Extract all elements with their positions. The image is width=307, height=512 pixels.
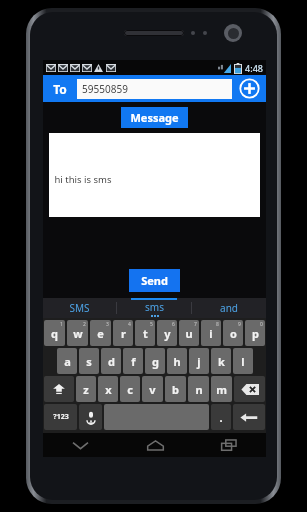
staticText: 6 xyxy=(172,321,175,328)
button[interactable]: Symbols xyxy=(44,404,77,430)
button[interactable]: j xyxy=(189,348,209,374)
button[interactable]: Recent apps xyxy=(192,433,266,457)
button[interactable]: Hide keyboard xyxy=(43,433,118,457)
staticText: h xyxy=(173,354,181,369)
staticText: Send xyxy=(141,273,168,288)
staticText: n xyxy=(195,382,203,397)
staticText: f xyxy=(131,354,136,369)
staticText: d xyxy=(108,354,115,369)
staticText: x xyxy=(105,382,112,397)
button[interactable]: l xyxy=(233,348,253,374)
staticText: hi this is sms xyxy=(54,173,112,186)
button[interactable]: z xyxy=(76,376,96,402)
staticText: 9 xyxy=(238,321,241,328)
button[interactable]: h xyxy=(167,348,187,374)
button[interactable]: w xyxy=(67,320,88,346)
button[interactable]: r xyxy=(113,320,133,346)
button[interactable]: Enter xyxy=(233,404,265,430)
button[interactable]: and xyxy=(192,298,266,318)
button[interactable]: u xyxy=(179,320,199,346)
staticText: SMS xyxy=(69,301,90,315)
staticText: c xyxy=(127,382,133,397)
button[interactable]: t xyxy=(135,320,155,346)
button[interactable]: x xyxy=(98,376,118,402)
staticText: To xyxy=(53,81,67,97)
button[interactable]: s xyxy=(79,348,99,374)
staticText: w xyxy=(73,326,83,341)
button[interactable]: m xyxy=(211,376,232,402)
staticText: 1 xyxy=(60,321,63,328)
button[interactable]: y xyxy=(157,320,177,346)
staticText: ?123 xyxy=(53,412,69,422)
staticText: Message xyxy=(130,110,179,125)
staticText: g xyxy=(152,354,159,369)
staticText: k xyxy=(218,354,225,369)
staticText: 3 xyxy=(106,321,109,328)
button[interactable]: Shift xyxy=(44,376,74,402)
button[interactable]: Add contact xyxy=(232,75,266,102)
button[interactable]: c xyxy=(120,376,140,402)
button[interactable]: SMS xyxy=(43,298,116,318)
staticText: 59550859 xyxy=(82,82,128,96)
staticText: q xyxy=(51,326,58,341)
button[interactable]: b xyxy=(165,376,186,402)
button[interactable]: Voice input xyxy=(79,404,102,430)
button[interactable]: f xyxy=(123,348,143,374)
button[interactable]: q xyxy=(44,320,65,346)
button[interactable]: 59550859 xyxy=(77,79,232,99)
staticText: y xyxy=(164,326,171,341)
staticText: o xyxy=(230,326,237,341)
staticText: 4 xyxy=(128,321,131,328)
staticText: b xyxy=(172,382,179,397)
staticText: a xyxy=(64,354,71,369)
staticText: . xyxy=(219,410,223,425)
button[interactable]: g xyxy=(145,348,165,374)
button[interactable]: o xyxy=(223,320,243,346)
button[interactable]: n xyxy=(188,376,209,402)
staticText: m xyxy=(216,382,227,397)
staticText: 7 xyxy=(194,321,197,328)
staticText: 5 xyxy=(150,321,153,328)
staticText: z xyxy=(83,382,89,397)
button[interactable]: k xyxy=(211,348,231,374)
staticText: v xyxy=(149,382,156,397)
button[interactable]: sms xyxy=(117,298,191,318)
staticText: 0 xyxy=(260,321,263,328)
staticText: 4:48 xyxy=(245,62,263,74)
button[interactable]: To xyxy=(43,75,77,102)
staticText: l xyxy=(241,354,245,369)
staticText: i xyxy=(209,326,213,341)
button[interactable]: Period xyxy=(211,404,231,430)
staticText: r xyxy=(121,326,126,341)
staticText: p xyxy=(252,326,259,341)
staticText: t xyxy=(143,326,148,341)
staticText: j xyxy=(197,354,201,369)
button[interactable]: v xyxy=(142,376,163,402)
staticText: u xyxy=(185,326,193,341)
button[interactable]: p xyxy=(245,320,265,346)
button[interactable]: Send xyxy=(129,269,180,292)
staticText: and xyxy=(220,301,238,315)
staticText: sms xyxy=(145,300,164,314)
button[interactable]: d xyxy=(101,348,121,374)
staticText: 2 xyxy=(83,321,86,328)
button[interactable]: Message xyxy=(121,107,188,128)
button[interactable]: hi this is sms xyxy=(49,133,260,217)
button[interactable]: a xyxy=(57,348,77,374)
staticText: e xyxy=(97,326,104,341)
button[interactable]: i xyxy=(201,320,221,346)
button[interactable]: e xyxy=(90,320,111,346)
staticText: 8 xyxy=(216,321,219,328)
button[interactable]: Delete xyxy=(234,376,265,402)
staticText: s xyxy=(86,354,92,369)
button[interactable]: Home xyxy=(118,433,192,457)
